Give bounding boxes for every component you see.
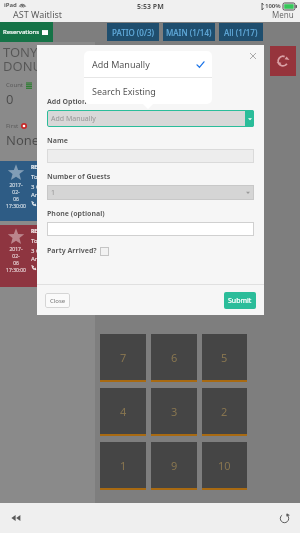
- staticText: 9: [171, 458, 178, 473]
- button[interactable]: 4: [100, 388, 146, 436]
- button[interactable]: Close: [45, 293, 70, 308]
- button[interactable]: PATIO (0/3): [107, 23, 159, 41]
- staticText: First: [6, 122, 19, 130]
- button[interactable]: 1: [100, 442, 146, 490]
- staticText: RESERVED: [31, 228, 89, 235]
- staticText: 6: [171, 350, 178, 365]
- staticText: Tom jones: [31, 237, 60, 245]
- staticText: Reservations: [3, 28, 40, 36]
- button[interactable]: Submit: [224, 292, 256, 309]
- staticText: 10: [218, 458, 231, 473]
- staticText: 4: [120, 404, 127, 419]
- button[interactable]: All (1/17): [219, 23, 263, 41]
- button[interactable]: Reservations: [0, 22, 53, 42]
- button[interactable]: 2017- 02- 06 17:30:00: [0, 225, 95, 287]
- staticText: Add Manually: [51, 114, 245, 124]
- button[interactable]: Add Manually: [84, 51, 212, 77]
- staticText: MAIN (1/14): [166, 27, 212, 38]
- staticText: Name: [47, 136, 68, 146]
- button[interactable]: Close: [247, 50, 259, 62]
- staticText: Phone (optional): [47, 209, 105, 219]
- staticText: 7: [120, 350, 127, 365]
- staticText: 2017- 02- 06 17:30:00: [6, 246, 26, 274]
- button[interactable]: 5: [202, 334, 247, 382]
- button[interactable]: Reload: [274, 508, 294, 528]
- button[interactable]: [47, 222, 254, 236]
- staticText: 3: [171, 404, 178, 419]
- staticText: 1: [120, 458, 127, 473]
- staticText: Search Existing: [92, 85, 156, 97]
- staticText: Submit: [228, 296, 252, 306]
- button[interactable]: 2: [202, 388, 247, 436]
- button[interactable]: 2017- 02- 06 17:30:00: [0, 161, 95, 221]
- staticText: Party Arrived?: [47, 246, 97, 256]
- staticText: RESERVED: [31, 164, 89, 171]
- staticText: Add Option: [47, 97, 87, 107]
- button[interactable]: Party Arrived?: [47, 246, 109, 256]
- button[interactable]: Refresh: [270, 46, 296, 76]
- button[interactable]: 9: [151, 442, 197, 490]
- button[interactable]: 7: [100, 334, 146, 382]
- button[interactable]: MAIN (1/14): [163, 23, 215, 41]
- staticText: None: [6, 131, 40, 149]
- button[interactable]: 6: [151, 334, 197, 382]
- button[interactable]: [47, 149, 254, 163]
- staticText: Menu: [272, 9, 294, 20]
- staticText: 5:53 PM: [137, 2, 164, 12]
- staticText: Close: [50, 297, 66, 305]
- staticText: iPad: [4, 1, 17, 9]
- staticText: Count: [6, 81, 24, 89]
- button[interactable]: Add Manually: [47, 110, 254, 127]
- staticText: 3 Guest(s), Not Arrived: [31, 183, 73, 199]
- staticText: 5: [221, 350, 228, 365]
- staticText: 2017- 02- 06 17:30:00: [6, 182, 26, 210]
- staticText: All (1/17): [224, 27, 258, 38]
- staticText: Add Manually: [92, 58, 197, 70]
- button[interactable]: 3: [151, 388, 197, 436]
- staticText: AST Waitlist: [13, 8, 63, 20]
- staticText: 0: [6, 90, 14, 108]
- button[interactable]: 10: [202, 442, 247, 490]
- staticText: PATIO (0/3): [112, 27, 155, 38]
- staticText: Tom jones: [31, 173, 60, 181]
- staticText: 2: [221, 404, 228, 419]
- staticText: TONYS DONUT H: [3, 43, 63, 75]
- button[interactable]: 1: [47, 185, 254, 200]
- staticText: 100%: [265, 2, 281, 10]
- staticText: 3 Guest(s), Not Arrived: [31, 247, 73, 263]
- button[interactable]: Back: [6, 508, 26, 528]
- button[interactable]: Search Existing: [84, 78, 212, 104]
- staticText: 111-222-3344: [37, 199, 76, 207]
- staticText: Number of Guests: [47, 172, 111, 182]
